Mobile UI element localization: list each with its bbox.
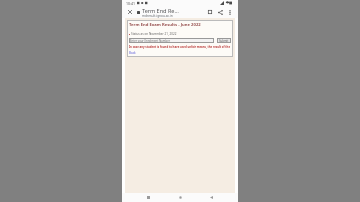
button[interactable]: Share	[215, 7, 225, 17]
staticText: In case any student is found to have use…	[129, 45, 231, 49]
staticText: Term End Re…	[142, 7, 179, 14]
staticText: Submit	[219, 39, 229, 43]
staticText: 10:41	[126, 1, 135, 6]
button[interactable]: Submit	[217, 38, 231, 43]
staticText: Status as on November 21, 2022	[131, 32, 177, 36]
button[interactable]: Back	[207, 193, 216, 202]
button[interactable]: More options	[225, 7, 235, 17]
button[interactable]: Recent apps	[144, 193, 153, 202]
staticText: Back	[129, 51, 136, 55]
staticText: Term End Exam Results - June 2022	[129, 22, 201, 28]
button[interactable]: Open in browser	[205, 7, 215, 17]
staticText: mdresult.ignou.ac.in	[142, 14, 173, 18]
button[interactable]: Back	[129, 51, 136, 55]
button[interactable]: Close	[125, 7, 135, 17]
button[interactable]: Enter your Enrolment Number	[130, 38, 213, 43]
button[interactable]: Home	[176, 193, 185, 202]
staticText: Enter your Enrolment Number	[130, 39, 170, 43]
